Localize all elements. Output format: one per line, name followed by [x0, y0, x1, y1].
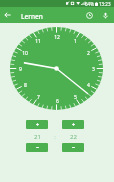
staticText: : — [54, 133, 56, 141]
button[interactable]: Decrease minutes — [62, 143, 84, 152]
staticText: 9 — [19, 66, 22, 73]
staticText: 11 — [35, 38, 41, 45]
staticText: 1 — [74, 38, 77, 45]
staticText: 64% — [85, 1, 94, 7]
staticText: 13:23 — [99, 1, 111, 7]
button[interactable]: Increase hours — [26, 120, 48, 129]
staticText: Lernen — [21, 12, 43, 21]
button[interactable]: Microphone — [99, 7, 112, 23]
staticText: 5 — [74, 94, 77, 101]
staticText: 3 — [92, 66, 95, 73]
button[interactable]: Back — [1, 7, 14, 23]
staticText: 2 — [87, 50, 90, 57]
button[interactable]: Increase minutes — [62, 120, 84, 129]
button[interactable]: Decrease hours — [26, 143, 48, 152]
staticText: 7 — [37, 94, 40, 101]
button[interactable]: History — [83, 7, 96, 23]
staticText: 10 — [22, 50, 28, 57]
staticText: 6 — [56, 98, 59, 105]
staticText: 12 — [54, 34, 60, 41]
staticText: 21 — [34, 133, 41, 141]
staticText: 22 — [70, 133, 77, 141]
staticText: 8 — [24, 82, 27, 89]
staticText: 4 — [87, 82, 90, 89]
